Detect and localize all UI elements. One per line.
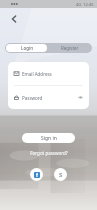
button[interactable]: Sign in with Google [54, 168, 67, 181]
staticText: Register [61, 45, 79, 51]
staticText: Email Address [22, 71, 52, 77]
staticText: f [36, 172, 38, 178]
button[interactable]: Back [7, 12, 21, 26]
button[interactable]: Sign in with Facebook [30, 168, 43, 181]
staticText: Password [22, 95, 43, 101]
staticText: Sign in [41, 135, 57, 142]
button[interactable]: Login [6, 44, 47, 52]
button[interactable]: Forgot password? [30, 150, 68, 156]
staticText: 4G 12:45 [76, 2, 94, 7]
staticText: Login [21, 45, 33, 51]
button[interactable]: Register [48, 43, 92, 53]
button[interactable]: Sign in [22, 133, 75, 143]
button[interactable]: Password [14, 86, 83, 109]
staticText: S [59, 171, 63, 179]
button[interactable]: Email Address [14, 62, 83, 85]
